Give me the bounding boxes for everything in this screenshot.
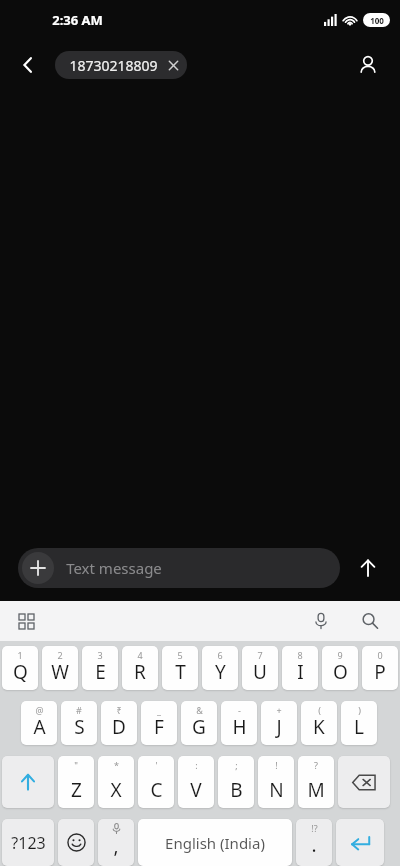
button[interactable]: 8 xyxy=(282,646,318,690)
button[interactable]: 3 xyxy=(82,646,118,690)
staticText: C xyxy=(150,777,163,803)
staticText: V xyxy=(190,777,202,803)
staticText: - xyxy=(238,704,241,716)
button[interactable]: : xyxy=(178,756,214,808)
staticText: O xyxy=(333,659,348,685)
staticText: ; xyxy=(235,759,238,771)
staticText: 100 xyxy=(370,15,384,26)
button[interactable]: 2 xyxy=(42,646,78,690)
button[interactable]: * xyxy=(98,756,134,808)
button[interactable]: 9 xyxy=(322,646,358,690)
staticText: 1 xyxy=(17,649,23,661)
staticText: 8 xyxy=(297,649,303,661)
other: Shift xyxy=(18,772,38,792)
staticText: # xyxy=(76,704,82,716)
staticText: E xyxy=(95,659,106,685)
button[interactable]: " xyxy=(58,756,94,808)
staticText: + xyxy=(276,704,282,716)
staticText: !? xyxy=(311,822,318,834)
button[interactable]: Add attachment xyxy=(22,552,54,584)
staticText: 7 xyxy=(257,649,263,661)
button[interactable]: ?123 xyxy=(2,819,54,866)
staticText: A xyxy=(33,714,46,740)
button[interactable]: Add attachment xyxy=(18,548,340,588)
button[interactable]: !? xyxy=(296,819,332,866)
staticText: , xyxy=(113,833,119,859)
staticText: * xyxy=(114,759,119,771)
staticText: M xyxy=(307,777,325,803)
button[interactable]: Backspace xyxy=(338,756,390,808)
other: Emoji xyxy=(67,833,86,852)
button[interactable]: Contact details xyxy=(348,45,388,85)
button[interactable]: 0 xyxy=(362,646,398,690)
button[interactable]: ) xyxy=(341,701,377,745)
staticText: " xyxy=(74,759,78,771)
button[interactable]: English (India) xyxy=(138,819,292,866)
staticText: I xyxy=(297,659,304,685)
staticText: T xyxy=(175,659,186,685)
button[interactable]: Search xyxy=(352,603,388,639)
button[interactable]: _ xyxy=(141,701,177,745)
button[interactable]: Send xyxy=(346,546,390,590)
button[interactable]: 6 xyxy=(202,646,238,690)
staticText: : xyxy=(195,759,198,771)
button[interactable]: @ xyxy=(21,701,57,745)
button[interactable]: & xyxy=(181,701,217,745)
staticText: N xyxy=(269,777,284,803)
staticText: G xyxy=(192,714,206,740)
staticText: F xyxy=(154,714,164,740)
staticText: _ xyxy=(157,704,161,716)
staticText: ? xyxy=(314,759,318,771)
button[interactable]: Back xyxy=(8,45,48,85)
staticText: 9 xyxy=(337,649,343,661)
staticText: @ xyxy=(35,704,44,716)
staticText: R xyxy=(134,659,146,685)
staticText: 4 xyxy=(137,649,143,661)
button[interactable]: Voice input xyxy=(303,603,339,639)
button[interactable]: ' xyxy=(138,756,174,808)
button[interactable]: 18730218809 xyxy=(55,51,187,79)
button[interactable]: Shift xyxy=(2,756,54,808)
staticText: 3 xyxy=(97,649,103,661)
staticText: Q xyxy=(13,659,28,685)
staticText: ' xyxy=(155,759,158,771)
staticText: X xyxy=(110,777,122,803)
staticText: 18730218809 xyxy=(69,56,158,75)
staticText: ( xyxy=(318,704,321,716)
staticText: Text message xyxy=(66,558,162,578)
button[interactable]: ? xyxy=(298,756,334,808)
staticText: Y xyxy=(215,659,226,685)
staticText: L xyxy=(354,714,364,740)
staticText: ₹ xyxy=(116,704,122,716)
button[interactable]: ; xyxy=(218,756,254,808)
button[interactable]: + xyxy=(261,701,297,745)
staticText: & xyxy=(196,704,203,716)
button[interactable]: ! xyxy=(258,756,294,808)
other: Backspace xyxy=(352,774,376,791)
staticText: D xyxy=(112,714,126,740)
staticText: 5 xyxy=(177,649,183,661)
staticText: 2:36 AM xyxy=(52,11,103,29)
staticText: W xyxy=(51,659,69,685)
button[interactable]: Keyboard modes xyxy=(8,603,44,639)
staticText: . xyxy=(311,832,317,858)
staticText: 2 xyxy=(57,649,63,661)
button[interactable]: 7 xyxy=(242,646,278,690)
button[interactable]: Emoji xyxy=(58,819,94,866)
button[interactable]: ₹ xyxy=(101,701,137,745)
button[interactable]: , xyxy=(98,819,134,866)
staticText: ) xyxy=(358,704,361,716)
button[interactable]: 4 xyxy=(122,646,158,690)
button[interactable]: ( xyxy=(301,701,337,745)
button[interactable]: 1 xyxy=(2,646,38,690)
button[interactable]: # xyxy=(61,701,97,745)
staticText: S xyxy=(74,714,85,740)
staticText: 0 xyxy=(377,649,383,661)
staticText: ?123 xyxy=(11,832,46,854)
button[interactable]: Enter xyxy=(336,819,384,866)
button[interactable]: - xyxy=(221,701,257,745)
staticText: K xyxy=(313,714,325,740)
staticText: U xyxy=(253,659,267,685)
button[interactable]: 5 xyxy=(162,646,198,690)
staticText: Z xyxy=(71,777,82,803)
